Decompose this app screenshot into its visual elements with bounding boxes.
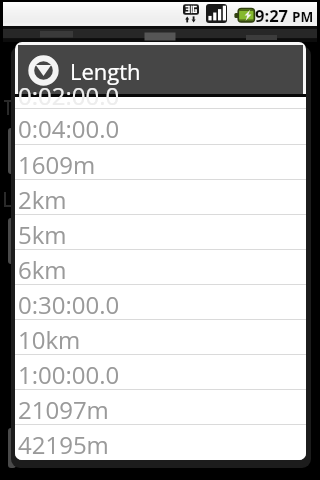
button[interactable]: 6km [15,250,306,284]
other: Signal strength [206,4,227,23]
button[interactable]: 1:00:00.0 [15,355,306,389]
staticText: 0:04:00.0 [18,112,120,145]
button[interactable]: 2km [15,180,306,214]
button[interactable]: 0:30:00.0 [15,285,306,319]
staticText: 1609m [18,148,96,181]
staticText: 2km [18,183,67,216]
staticText: 21097m [18,393,109,426]
staticText: 10km [18,323,81,356]
button[interactable]: 0:02:00.0 [15,76,306,110]
button[interactable]: Open dropdown [18,45,303,94]
button[interactable]: 5km [15,215,306,249]
button[interactable]: 42195m [15,425,306,459]
button[interactable]: 21097m [15,390,306,424]
staticText: 0:30:00.0 [18,288,120,321]
staticText: 9:27 [255,4,289,26]
other: 3G data [183,4,200,24]
staticText: 5km [18,218,67,251]
staticText: Length [70,56,141,86]
button[interactable]: 1609m [15,145,306,179]
button[interactable]: 0:04:00.0 [15,109,306,143]
staticText: PM [292,8,314,26]
other: Open dropdown [28,55,59,86]
other: Battery charging [232,5,256,24]
staticText: 1:00:00.0 [18,358,120,391]
button[interactable]: 10km [15,320,306,354]
staticText: 42195m [18,428,109,460]
staticText: 6km [18,253,67,286]
staticText: 0:02:00.0 [18,79,120,112]
